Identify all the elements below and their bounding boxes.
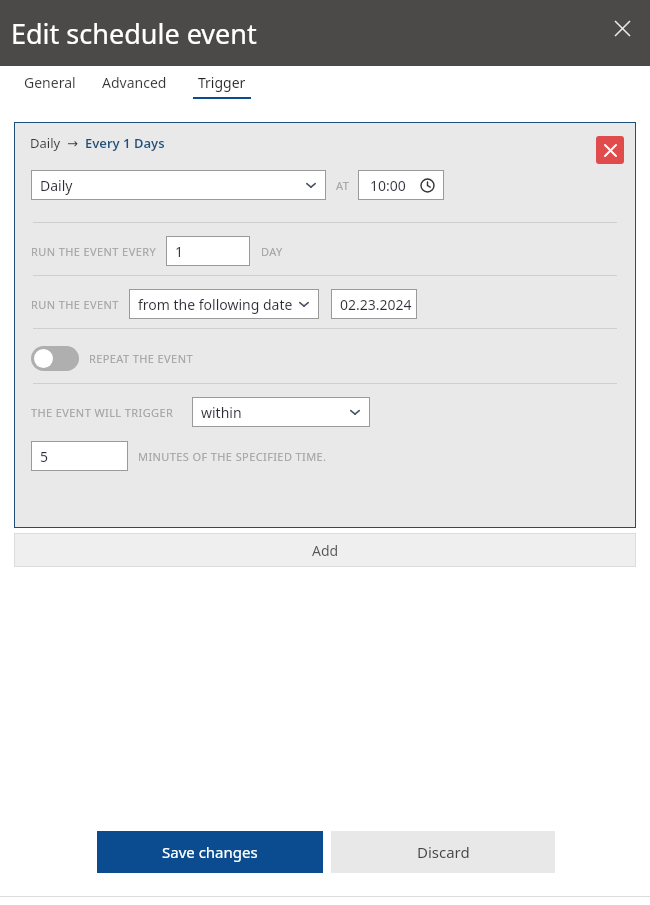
staticText: RUN THE EVENT EVERY — [31, 244, 157, 259]
button[interactable]: General — [22, 73, 78, 99]
button[interactable]: Save changes — [97, 831, 323, 873]
button[interactable]: from the following date — [129, 289, 319, 319]
staticText: 10:00 — [370, 176, 406, 195]
staticText: Advanced — [102, 73, 167, 92]
staticText: Daily → — [30, 134, 85, 152]
staticText: REPEAT THE EVENT — [89, 351, 193, 366]
button[interactable]: 5 — [31, 441, 128, 471]
button[interactable]: Trigger — [191, 73, 253, 99]
button[interactable]: within — [192, 397, 370, 427]
button[interactable]: Close — [604, 10, 640, 46]
staticText: DAY — [261, 244, 283, 259]
button[interactable]: Advanced — [100, 73, 169, 99]
staticText: MINUTES OF THE SPECIFIED TIME. — [138, 449, 327, 464]
button[interactable]: 1 — [166, 236, 250, 266]
staticText: Edit schedule event — [11, 15, 257, 52]
staticText: Trigger — [198, 73, 246, 92]
staticText: RUN THE EVENT — [31, 297, 119, 312]
button[interactable]: Delete trigger — [596, 136, 624, 164]
staticText: Add — [312, 541, 339, 560]
staticText: Save changes — [162, 842, 258, 862]
staticText: 5 — [40, 447, 49, 466]
staticText: 1 — [175, 242, 184, 261]
staticText: General — [24, 73, 76, 92]
button[interactable]: Discard — [331, 831, 555, 873]
button[interactable]: Repeat the event toggle — [31, 346, 79, 371]
staticText: 02.23.2024 — [340, 295, 412, 314]
button[interactable]: 10:00 — [358, 170, 444, 200]
button[interactable]: Every 1 Days — [85, 134, 165, 152]
staticText: within — [201, 403, 242, 422]
button[interactable]: Daily — [31, 170, 326, 200]
staticText: from the following date — [138, 295, 293, 314]
button[interactable]: 02.23.2024 — [331, 289, 417, 319]
button[interactable]: Add — [14, 533, 636, 567]
staticText: THE EVENT WILL TRIGGER — [31, 405, 174, 420]
staticText: AT — [336, 178, 350, 193]
staticText: Discard — [417, 842, 470, 862]
staticText: Daily — [40, 176, 73, 195]
